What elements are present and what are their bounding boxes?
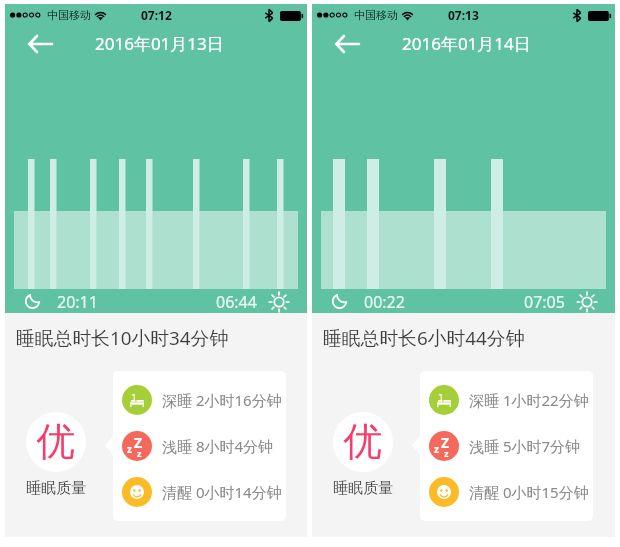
staticText: 中国移动 bbox=[47, 8, 91, 22]
button[interactable]: z bbox=[429, 431, 593, 461]
staticText: z bbox=[434, 442, 439, 456]
staticText: z bbox=[127, 442, 132, 456]
button[interactable]: 深睡 1小时22分钟 bbox=[429, 385, 593, 415]
staticText: 中国移动 bbox=[354, 8, 398, 22]
staticText: z bbox=[444, 447, 449, 459]
staticText: 07:13 bbox=[448, 7, 479, 23]
staticText: 浅睡 8小时4分钟 bbox=[162, 436, 274, 456]
button[interactable]: 清醒 0小时14分钟 bbox=[122, 477, 286, 507]
staticText: 2016年01月13日 bbox=[95, 32, 224, 55]
staticText: 06:44 bbox=[216, 291, 257, 313]
staticText: 2016年01月14日 bbox=[402, 32, 531, 55]
button[interactable]: Back bbox=[23, 27, 57, 61]
button[interactable]: z bbox=[122, 431, 286, 461]
staticText: 深睡 1小时22分钟 bbox=[469, 390, 589, 410]
staticText: 优 bbox=[343, 417, 382, 466]
button[interactable]: Back bbox=[330, 27, 364, 61]
staticText: z bbox=[137, 447, 142, 459]
staticText: 清醒 0小时14分钟 bbox=[162, 482, 282, 502]
staticText: 浅睡 5小时7分钟 bbox=[469, 436, 581, 456]
button[interactable]: 优 bbox=[26, 412, 86, 472]
staticText: Z bbox=[134, 433, 143, 452]
button[interactable]: 清醒 0小时15分钟 bbox=[429, 477, 593, 507]
staticText: 07:12 bbox=[141, 7, 172, 23]
staticText: 深睡 2小时16分钟 bbox=[162, 390, 282, 410]
button[interactable]: 深睡 2小时16分钟 bbox=[122, 385, 286, 415]
staticText: 00:22 bbox=[364, 291, 405, 313]
staticText: 睡眠总时长10小时34分钟 bbox=[16, 325, 229, 351]
staticText: 优 bbox=[36, 417, 75, 466]
staticText: 07:05 bbox=[524, 291, 565, 313]
staticText: 睡眠总时长6小时44分钟 bbox=[323, 325, 525, 351]
staticText: 20:11 bbox=[57, 291, 98, 313]
button[interactable]: 优 bbox=[333, 412, 393, 472]
staticText: Z bbox=[441, 433, 450, 452]
staticText: 睡眠质量 bbox=[333, 479, 393, 498]
staticText: 清醒 0小时15分钟 bbox=[469, 482, 589, 502]
staticText: 睡眠质量 bbox=[26, 479, 86, 498]
